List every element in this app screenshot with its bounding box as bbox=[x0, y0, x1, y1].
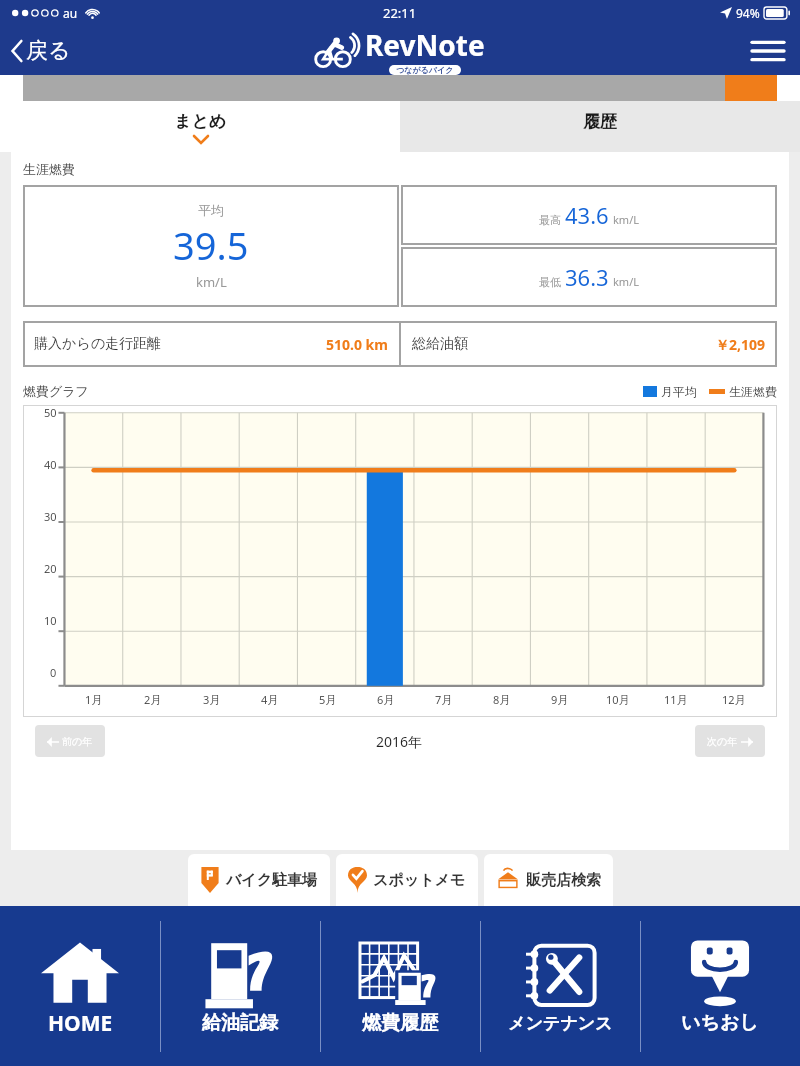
staticText: 50 bbox=[44, 405, 57, 420]
staticText: 次の年 bbox=[707, 735, 738, 748]
staticText: km/L bbox=[196, 273, 227, 291]
button[interactable]: 販売店検索 bbox=[484, 854, 613, 906]
staticText: 43.6 bbox=[565, 200, 609, 230]
button[interactable]: HOME bbox=[0, 906, 160, 1066]
staticText: 30 bbox=[44, 509, 57, 524]
staticText: 購入からの走行距離 bbox=[34, 335, 161, 353]
button[interactable]: 次の年 bbox=[695, 725, 765, 757]
staticText: つながるバイク bbox=[396, 65, 454, 75]
staticText: 生涯燃費 bbox=[729, 384, 777, 399]
staticText: 12月 bbox=[722, 692, 746, 707]
staticText: au bbox=[63, 5, 78, 21]
button[interactable]: メンテナンス bbox=[480, 906, 640, 1066]
staticText: 2月 bbox=[144, 692, 162, 707]
staticText: 最低 bbox=[539, 275, 561, 289]
staticText: まとめ bbox=[174, 111, 227, 132]
staticText: 11月 bbox=[664, 692, 688, 707]
button[interactable]: Menu bbox=[736, 29, 800, 73]
staticText: 燃費グラフ bbox=[23, 383, 89, 399]
button[interactable]: 総給油額 bbox=[401, 321, 777, 367]
button[interactable]: スポットメモ bbox=[336, 854, 478, 906]
button[interactable]: いちおし bbox=[640, 906, 800, 1066]
staticText: 月平均 bbox=[661, 384, 697, 399]
staticText: スポットメモ bbox=[373, 871, 466, 890]
staticText: RevNote bbox=[365, 26, 485, 64]
staticText: km/L bbox=[613, 212, 640, 227]
staticText: 履歴 bbox=[583, 111, 617, 132]
staticText: 20 bbox=[44, 561, 57, 576]
staticText: 販売店検索 bbox=[526, 871, 601, 890]
staticText: km/L bbox=[613, 274, 640, 289]
staticText: 22:11 bbox=[383, 4, 417, 22]
staticText: 生涯燃費 bbox=[23, 161, 75, 177]
button[interactable]: まとめ bbox=[0, 101, 400, 152]
staticText: 9月 bbox=[551, 692, 569, 707]
button[interactable]: 前の年 bbox=[35, 725, 105, 757]
staticText: 6月 bbox=[377, 692, 395, 707]
button[interactable] bbox=[23, 75, 777, 101]
staticText: ￥2,109 bbox=[715, 335, 766, 354]
staticText: 10月 bbox=[606, 692, 630, 707]
staticText: バイク駐車場 bbox=[226, 871, 318, 890]
staticText: 10 bbox=[44, 613, 57, 628]
staticText: 戻る bbox=[26, 37, 71, 65]
staticText: 40 bbox=[44, 457, 57, 472]
button[interactable]: 購入からの走行距離 bbox=[23, 321, 399, 367]
staticText: 1月 bbox=[85, 692, 103, 707]
staticText: 0 bbox=[50, 665, 57, 680]
staticText: 前の年 bbox=[62, 735, 93, 748]
staticText: 2016年 bbox=[376, 732, 423, 751]
staticText: 燃費履歴 bbox=[362, 1011, 438, 1035]
button[interactable]: 燃費履歴 bbox=[320, 906, 480, 1066]
staticText: 510.0 km bbox=[326, 335, 388, 354]
button[interactable]: 戻る bbox=[0, 31, 83, 71]
staticText: 5月 bbox=[319, 692, 337, 707]
staticText: 7月 bbox=[435, 692, 453, 707]
staticText: 39.5 bbox=[173, 219, 249, 271]
staticText: HOME bbox=[48, 1009, 113, 1038]
staticText: 給油記録 bbox=[202, 1011, 278, 1035]
button[interactable]: 履歴 bbox=[400, 101, 800, 152]
staticText: 94% bbox=[736, 5, 760, 21]
staticText: 総給油額 bbox=[412, 335, 468, 353]
staticText: 4月 bbox=[261, 692, 279, 707]
button[interactable]: バイク駐車場 bbox=[188, 854, 330, 906]
staticText: メンテナンス bbox=[508, 1013, 613, 1034]
staticText: 3月 bbox=[203, 692, 221, 707]
staticText: 平均 bbox=[198, 202, 224, 218]
staticText: 最高 bbox=[539, 213, 561, 227]
button[interactable]: 給油記録 bbox=[160, 906, 320, 1066]
staticText: 8月 bbox=[493, 692, 511, 707]
staticText: いちおし bbox=[681, 1011, 759, 1035]
staticText: 36.3 bbox=[565, 262, 609, 292]
